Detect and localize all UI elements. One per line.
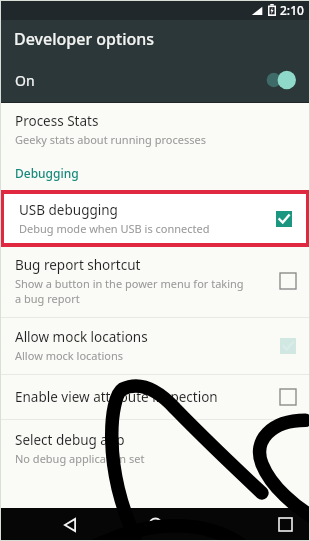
- button[interactable]: [279, 272, 297, 290]
- button[interactable]: [279, 388, 297, 406]
- button[interactable]: On: [0, 58, 310, 102]
- staticText: Bug report shortcut: [15, 256, 141, 274]
- button[interactable]: [279, 337, 297, 355]
- staticText: Allow mock locations: [15, 328, 148, 346]
- button[interactable]: Allow mock locations: [0, 318, 310, 374]
- staticText: 2:10: [280, 2, 304, 18]
- staticText: Show a button in the power menu for taki…: [15, 276, 244, 291]
- staticText: Debug mode when USB is connected: [19, 221, 210, 236]
- staticText: Enable view attribute inspection: [15, 388, 218, 406]
- button[interactable]: [275, 210, 293, 228]
- button[interactable]: Select debug app: [0, 420, 310, 477]
- button[interactable]: Enable view attribute inspection: [0, 375, 310, 419]
- button[interactable]: Back: [62, 517, 78, 533]
- staticText: Geeky stats about running processes: [15, 132, 206, 147]
- button[interactable]: Recent apps: [279, 518, 292, 531]
- staticText: Debugging: [15, 165, 79, 181]
- button[interactable]: Home: [148, 517, 163, 532]
- button[interactable]: Bug report shortcut: [0, 247, 310, 317]
- staticText: USB debugging: [19, 201, 118, 219]
- staticText: No debug application set: [15, 451, 145, 466]
- staticText: a bug report: [15, 291, 80, 306]
- button[interactable]: Process Stats: [0, 103, 310, 161]
- staticText: Allow mock locations: [15, 348, 124, 363]
- staticText: Developer options: [14, 28, 155, 50]
- staticText: Select debug app: [15, 431, 125, 449]
- staticText: On: [15, 71, 35, 90]
- staticText: Process Stats: [15, 112, 99, 130]
- button[interactable]: USB debugging: [4, 194, 306, 243]
